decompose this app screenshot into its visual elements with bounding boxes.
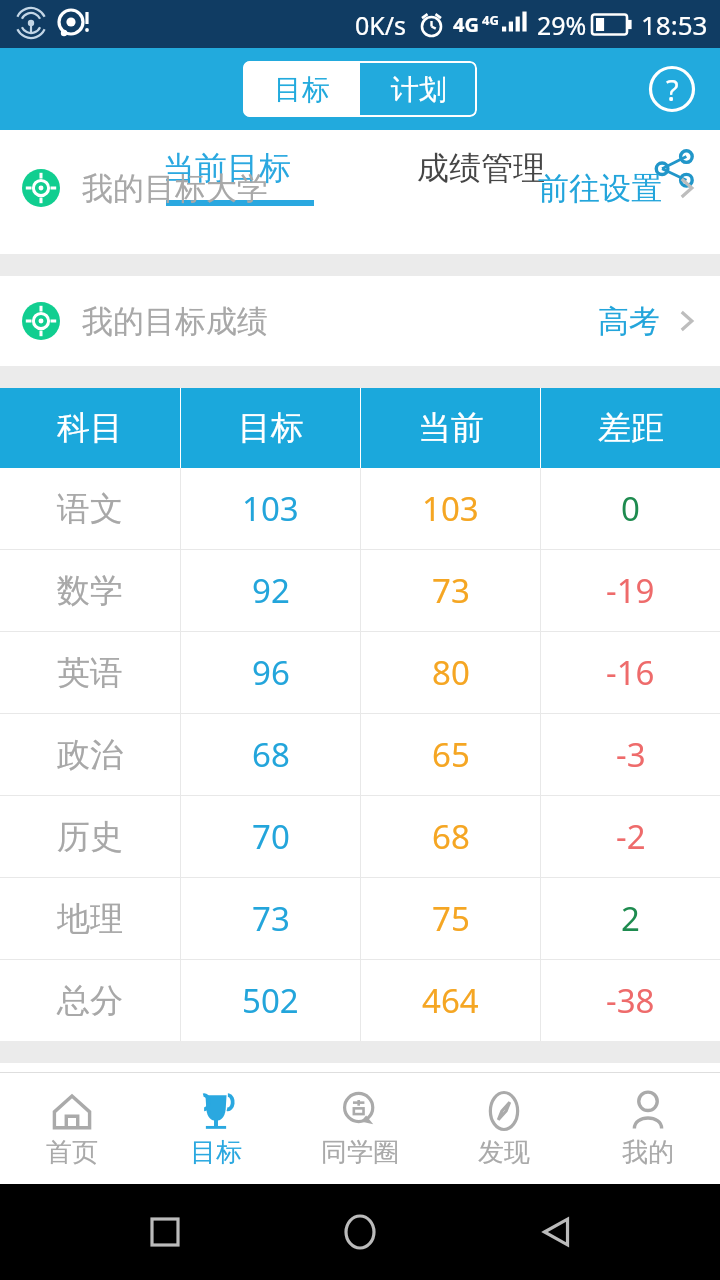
staticText: 当前目标 — [163, 148, 291, 188]
button[interactable]: 发现 — [432, 1073, 576, 1184]
staticText: 计划 — [391, 72, 447, 107]
staticText: 73 — [432, 568, 470, 613]
staticText: 我的目标大学 — [82, 169, 268, 208]
staticText: 目标 — [274, 72, 330, 107]
staticText: 语文 — [57, 488, 123, 530]
button[interactable]: 目标 — [243, 61, 360, 117]
button[interactable]: 首页 — [0, 1073, 144, 1184]
staticText: 历史 — [57, 816, 123, 858]
button[interactable]: 地理 — [0, 878, 720, 959]
staticText: 前往设置 — [538, 169, 662, 208]
staticText: 96 — [252, 650, 290, 695]
staticText: 29% — [537, 8, 587, 42]
staticText: 103 — [422, 486, 479, 531]
staticText: 当前 — [418, 407, 484, 449]
staticText: 差距 — [598, 407, 664, 449]
staticText: 地理 — [57, 898, 123, 940]
staticText: 68 — [432, 814, 470, 859]
button[interactable]: 成绩管理 — [354, 130, 608, 206]
staticText: 80 — [432, 650, 470, 695]
staticText: -19 — [606, 568, 655, 613]
button[interactable]: 目标 — [144, 1073, 288, 1184]
staticText: 73 — [252, 896, 290, 941]
staticText: ? — [666, 70, 679, 109]
staticText: 0K/s — [355, 8, 407, 42]
button[interactable]: 同学圈 — [288, 1073, 432, 1184]
staticText: 数学 — [57, 570, 123, 612]
button[interactable]: 当前目标 — [100, 130, 354, 206]
staticText: 英语 — [57, 652, 123, 694]
staticText: 成绩管理 — [417, 148, 545, 188]
staticText: 高考 — [598, 302, 660, 341]
staticText: 目标 — [238, 407, 304, 449]
button[interactable]: 英语 — [0, 632, 720, 713]
button[interactable]: 语文 — [0, 468, 720, 549]
staticText: 我的 — [622, 1136, 674, 1169]
staticText: 464 — [422, 978, 479, 1023]
staticText: 92 — [252, 568, 290, 613]
button[interactable]: 我的目标成绩 — [0, 276, 720, 366]
button[interactable]: Back — [525, 1201, 587, 1263]
button[interactable]: 计划 — [360, 61, 477, 117]
button[interactable]: 我的 — [576, 1073, 720, 1184]
staticText: 4G — [482, 11, 499, 29]
staticText: -16 — [606, 650, 655, 695]
staticText: 502 — [242, 978, 299, 1023]
button[interactable]: 政治 — [0, 714, 720, 795]
button[interactable]: Share — [646, 139, 704, 197]
button[interactable]: 数学 — [0, 550, 720, 631]
staticText: 4G — [453, 11, 479, 38]
staticText: 同学圈 — [321, 1136, 399, 1169]
staticText: 65 — [432, 732, 470, 777]
staticText: 70 — [252, 814, 290, 859]
staticText: 103 — [242, 486, 299, 531]
staticText: 政治 — [57, 734, 123, 776]
staticText: 18:53 — [641, 7, 708, 42]
button[interactable]: Recent apps — [134, 1201, 196, 1263]
staticText: 总分 — [57, 980, 123, 1022]
staticText: 2 — [621, 896, 640, 941]
button[interactable]: 总分 — [0, 960, 720, 1041]
staticText: 75 — [432, 896, 470, 941]
staticText: 0 — [621, 486, 640, 531]
staticText: -2 — [616, 814, 646, 859]
staticText: -38 — [606, 978, 655, 1023]
staticText: 68 — [252, 732, 290, 777]
staticText: 科目 — [57, 407, 123, 449]
staticText: 首页 — [46, 1136, 98, 1169]
button[interactable]: Help — [644, 61, 700, 117]
button[interactable]: 历史 — [0, 796, 720, 877]
staticText: -3 — [616, 732, 646, 777]
staticText: 目标 — [190, 1136, 242, 1169]
button[interactable]: Home — [329, 1201, 391, 1263]
staticText: 我的目标成绩 — [82, 302, 268, 341]
staticText: 发现 — [478, 1136, 530, 1169]
